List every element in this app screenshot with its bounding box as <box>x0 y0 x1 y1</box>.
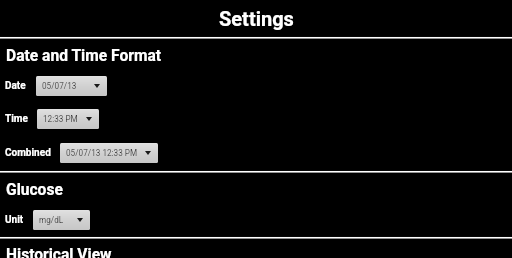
button[interactable]: 12:33 PM <box>37 109 99 129</box>
button[interactable]: mg/dL <box>33 210 90 230</box>
staticText: Time <box>5 113 28 125</box>
staticText: Glucose <box>6 181 63 199</box>
staticText: Unit <box>5 214 24 226</box>
staticText: Historical View <box>6 246 112 258</box>
button[interactable]: 05/07/13 <box>36 76 107 96</box>
staticText: mg/dL <box>39 215 64 225</box>
staticText: 12:33 PM <box>43 114 78 124</box>
staticText: Date and Time Format <box>6 47 162 65</box>
staticText: Combined <box>5 147 51 159</box>
staticText: 05/07/13 <box>42 81 77 91</box>
button[interactable]: 05/07/13 12:33 PM <box>60 143 158 163</box>
staticText: 05/07/13 12:33 PM <box>66 148 138 158</box>
staticText: Settings <box>219 7 294 30</box>
staticText: Date <box>5 80 26 92</box>
